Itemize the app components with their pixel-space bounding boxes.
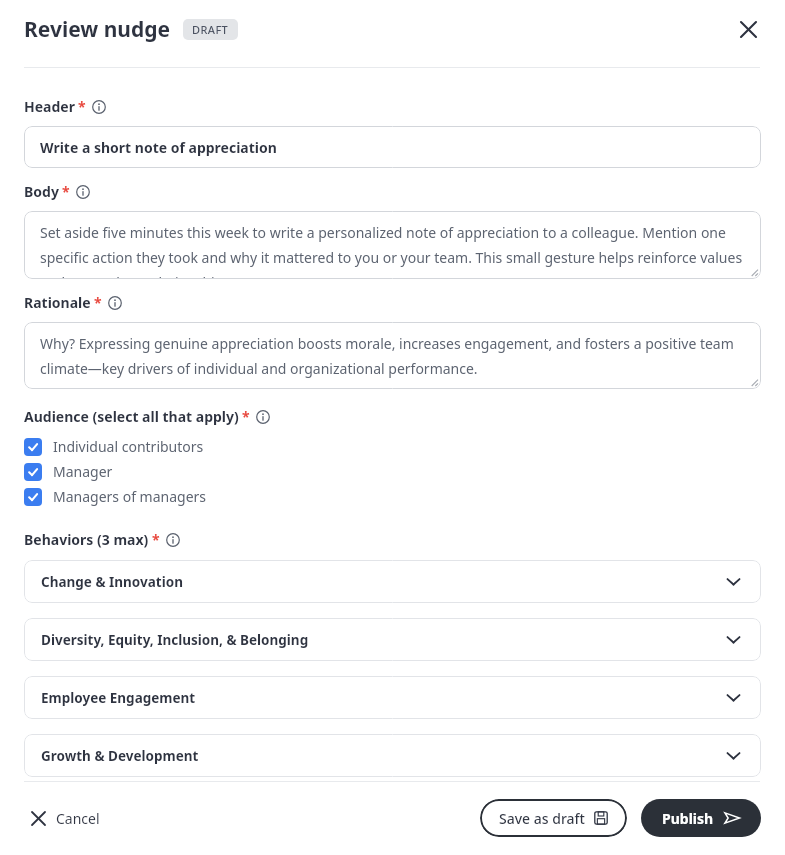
staticText: Individual contributors	[53, 437, 204, 456]
button[interactable]: Why? Expressing genuine appreciation boo…	[24, 322, 761, 389]
staticText: Change & Innovation	[41, 573, 183, 591]
button[interactable]: Diversity, Equity, Inclusion, & Belongin…	[24, 618, 761, 661]
button[interactable]: Save as draft	[480, 799, 627, 837]
button[interactable]: Growth & Development	[24, 734, 761, 777]
button[interactable]: Change & Innovation	[24, 560, 761, 603]
staticText: Header	[24, 97, 75, 116]
button[interactable]: Managers of managers	[24, 484, 761, 509]
button[interactable]: Manager	[24, 459, 761, 484]
staticText: *	[94, 293, 102, 312]
button[interactable]: Write a short note of appreciation	[24, 126, 761, 168]
staticText: *	[78, 97, 86, 116]
staticText: *	[242, 407, 250, 426]
staticText: Cancel	[56, 809, 100, 828]
staticText: Manager	[53, 462, 113, 481]
staticText: Write a short note of appreciation	[40, 138, 277, 157]
staticText: *	[62, 182, 70, 201]
button[interactable]: Individual contributors	[24, 434, 761, 459]
button[interactable]: Set aside five minutes this week to writ…	[24, 211, 761, 279]
staticText: Employee Engagement	[41, 689, 196, 707]
staticText: Publish	[662, 809, 714, 828]
button[interactable]: Close	[731, 12, 765, 46]
staticText: Managers of managers	[53, 487, 207, 506]
staticText: Why? Expressing genuine appreciation boo…	[40, 334, 749, 378]
button[interactable]: Publish	[641, 799, 761, 837]
staticText: Save as draft	[499, 809, 585, 828]
staticText: Review nudge	[24, 15, 171, 44]
staticText: *	[152, 530, 160, 549]
staticText: DRAFT	[192, 22, 229, 37]
staticText: Behaviors (3 max)	[24, 530, 149, 549]
staticText: Set aside five minutes this week to writ…	[40, 223, 749, 279]
button[interactable]: Employee Engagement	[24, 676, 761, 719]
staticText: Diversity, Equity, Inclusion, & Belongin…	[41, 631, 309, 649]
staticText: Audience (select all that apply)	[24, 407, 239, 426]
staticText: Growth & Development	[41, 747, 199, 765]
staticText: Body	[24, 182, 59, 201]
button[interactable]: Cancel	[24, 801, 108, 836]
staticText: Rationale	[24, 293, 91, 312]
